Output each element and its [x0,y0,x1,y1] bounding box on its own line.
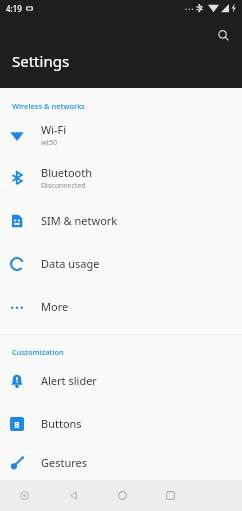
staticText: Buttons [41,416,82,431]
button[interactable]: Bluetooth [0,156,242,199]
staticText: wt50 [41,138,58,148]
staticText: Gestures [41,455,88,470]
button[interactable]: B [0,402,242,445]
staticText: Data usage [41,256,100,271]
staticText: 4:19 [6,3,22,14]
button[interactable]: Search [212,24,234,46]
staticText: Disconnected [41,181,86,191]
staticText: Alert slider [41,373,97,388]
staticText: Bluetooth [41,165,93,180]
staticText: B [14,419,20,430]
staticText: Wireless & networks [12,101,85,111]
button[interactable]: Home [98,480,146,511]
button[interactable]: Back [49,480,98,511]
staticText: Customization [12,347,64,357]
staticText: More [41,299,69,314]
button[interactable]: Data usage [0,242,242,285]
button[interactable]: More [0,285,242,328]
staticText: Settings [12,51,70,71]
button[interactable]: Wi-Fi [0,113,242,156]
staticText: SIM & network [41,213,118,228]
staticText: Wi-Fi [41,122,67,137]
button[interactable]: SIM & network [0,199,242,242]
button[interactable]: Assistant [0,480,49,511]
button[interactable]: Gestures [0,445,242,480]
button[interactable]: Alert slider [0,359,242,402]
button[interactable]: Recents [146,480,194,511]
